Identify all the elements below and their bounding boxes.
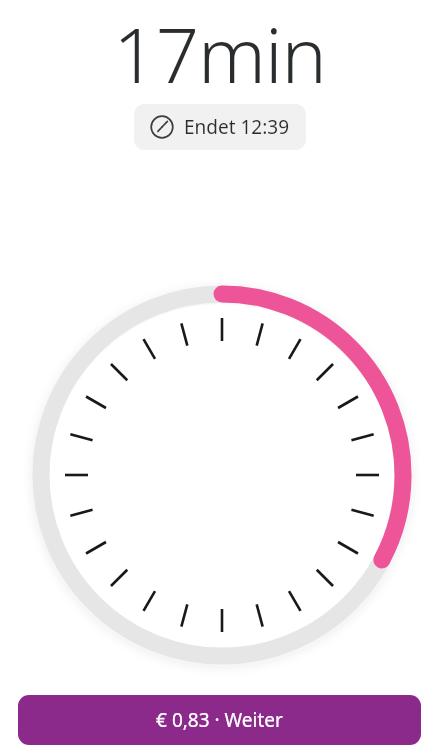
staticText: Endet 12:39 xyxy=(184,114,290,140)
button[interactable]: € 0,83 · Weiter xyxy=(18,695,421,745)
button[interactable]: Endet 12:39 xyxy=(134,104,306,150)
staticText: 17min xyxy=(113,2,326,106)
staticText: € 0,83 · Weiter xyxy=(156,707,283,733)
